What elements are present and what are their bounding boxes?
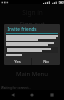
- button[interactable]: Leaderboard: [0, 51, 64, 67]
- staticText: Sign in: [22, 8, 43, 17]
- staticText: No: [43, 59, 49, 65]
- button[interactable]: Sign out: [0, 19, 64, 30]
- button[interactable]: Main Menu: [0, 69, 64, 79]
- staticText: Invite: [21, 32, 44, 44]
- staticText: Sign out: [19, 20, 45, 29]
- staticText: Main Menu: [16, 70, 48, 78]
- staticText: Yes: [14, 59, 21, 65]
- button[interactable]: No: [32, 58, 60, 65]
- staticText: Invite friends: [7, 26, 37, 32]
- button[interactable]: Yes: [4, 58, 31, 65]
- button[interactable]: Recent apps: [45, 90, 59, 100]
- button[interactable]: Home: [25, 90, 39, 100]
- staticText: & Rating: [22, 59, 43, 66]
- staticText: Leaderboard: [17, 52, 48, 59]
- staticText: Waiting for connect...: [1, 86, 31, 90]
- button[interactable]: Invite: [0, 31, 64, 45]
- button[interactable]: Back: [6, 90, 20, 100]
